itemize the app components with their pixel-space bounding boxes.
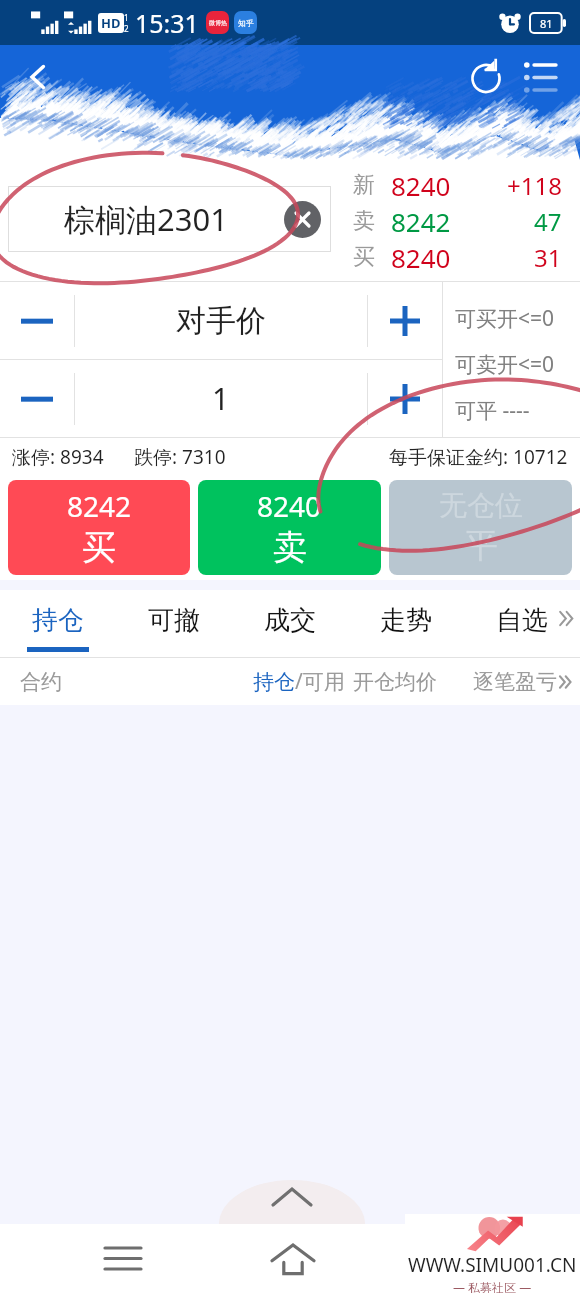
staticText: +118: [507, 169, 562, 202]
button[interactable]: Increase: [368, 282, 442, 359]
button[interactable]: 8242: [8, 480, 190, 575]
staticText: 逐笔盈亏: [473, 669, 557, 695]
button[interactable]: 走势: [348, 590, 464, 657]
button[interactable]: Decrease: [0, 282, 74, 359]
button[interactable]: 8240: [198, 480, 381, 575]
staticText: 可卖开<=0: [455, 350, 555, 379]
staticText: 81: [540, 16, 553, 31]
staticText: 8240: [257, 487, 322, 525]
button[interactable]: Back: [14, 53, 62, 101]
button[interactable]: Menu: [514, 51, 566, 103]
staticText: 棕榈油2301: [64, 198, 228, 240]
staticText: 8242: [391, 204, 451, 239]
button[interactable]: Recents: [0, 1224, 245, 1293]
button[interactable]: Increase: [368, 360, 442, 437]
staticText: 成交: [264, 604, 316, 637]
staticText: 每手保证金约: 10712: [389, 444, 568, 470]
staticText: 买: [82, 526, 116, 569]
staticText: WWW.SIMU001.CN: [408, 1252, 577, 1278]
staticText: 合约: [20, 669, 62, 695]
staticText: 持仓: [253, 669, 295, 695]
staticText: /可用: [295, 667, 345, 696]
staticText: — 私募社区 —: [453, 1279, 532, 1293]
button[interactable]: Clear: [284, 201, 321, 238]
button[interactable]: 棕榈油2301: [8, 186, 331, 252]
staticText: 走势: [380, 604, 432, 637]
button[interactable]: 可撤: [116, 590, 232, 657]
button[interactable]: 持仓: [0, 590, 116, 657]
button[interactable]: 自选: [464, 590, 580, 657]
button[interactable]: Decrease: [0, 360, 74, 437]
staticText: 开仓均价: [353, 669, 437, 695]
staticText: 持仓: [32, 604, 84, 637]
staticText: 2: [124, 23, 129, 34]
button[interactable]: 无仓位: [389, 480, 572, 575]
button[interactable]: 成交: [232, 590, 348, 657]
staticText: 新: [353, 171, 375, 199]
staticText: 卖: [273, 526, 307, 569]
staticText: 8240: [391, 168, 451, 203]
staticText: 无仓位: [439, 488, 523, 523]
staticText: 1: [124, 12, 129, 23]
staticText: 卖: [353, 207, 375, 235]
staticText: HD: [101, 14, 121, 32]
staticText: 47: [534, 205, 562, 238]
staticText: 8240: [391, 240, 451, 275]
button[interactable]: Home: [243, 1224, 343, 1293]
staticText: 8242: [67, 487, 132, 525]
staticText: 15:31: [135, 6, 199, 40]
staticText: 涨停: 8934: [12, 444, 104, 470]
staticText: 平: [464, 524, 498, 567]
staticText: 知乎: [238, 18, 254, 28]
staticText: 自选: [496, 604, 548, 637]
staticText: 微博热: [209, 19, 227, 27]
staticText: 1: [212, 378, 230, 419]
button[interactable]: Refresh: [459, 50, 513, 104]
staticText: 对手价: [176, 302, 266, 340]
staticText: 可撤: [148, 604, 200, 637]
staticText: 31: [534, 241, 562, 274]
staticText: 可买开<=0: [455, 304, 555, 333]
staticText: 跌停: 7310: [134, 444, 226, 470]
staticText: 可平 ----: [455, 396, 530, 425]
staticText: 买: [353, 243, 375, 271]
